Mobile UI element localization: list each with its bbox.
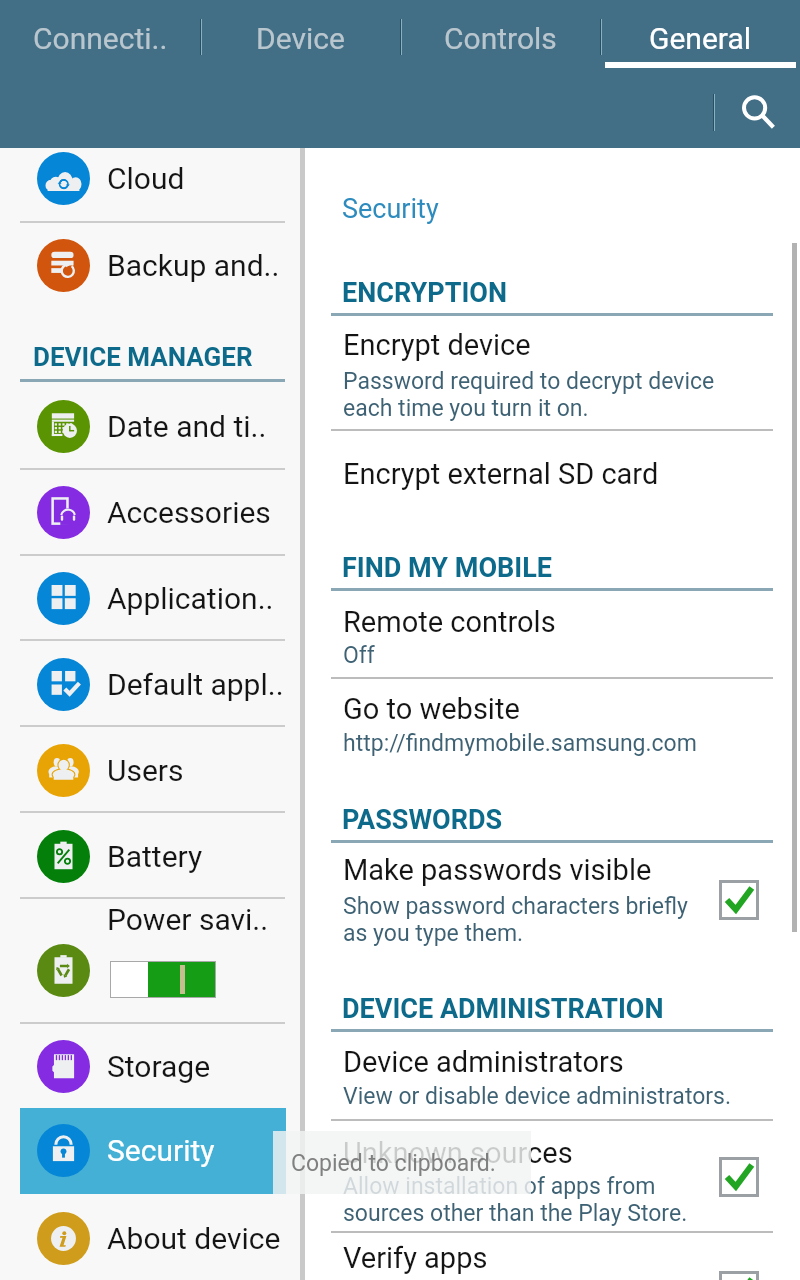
staticText: Verify apps — [343, 1241, 488, 1275]
staticText: Controls — [444, 21, 557, 56]
staticText: View or disable device administrators. — [343, 1083, 732, 1110]
button[interactable]: Unknown sources checkbox, checked — [719, 1157, 759, 1197]
staticText: Off — [343, 642, 375, 669]
button[interactable]: Verify apps — [331, 1233, 773, 1280]
staticText: Cloud — [107, 161, 185, 196]
staticText: Application.. — [107, 581, 274, 616]
staticText: Encrypt external SD card — [343, 457, 659, 491]
button[interactable]: Security — [0, 1107, 300, 1193]
staticText: FIND MY MOBILE — [342, 552, 552, 584]
staticText: Connecti.. — [33, 21, 168, 56]
staticText: http://findmymobile.samsung.com — [343, 730, 697, 757]
button[interactable]: Unknown sources — [331, 1121, 773, 1231]
button[interactable]: ENCRYPTION — [331, 277, 773, 309]
staticText: ENCRYPTION — [342, 277, 507, 309]
staticText: Allow installation of apps from sources … — [343, 1173, 688, 1227]
button[interactable]: Connecti.. — [0, 0, 200, 76]
button[interactable]: About device — [0, 1195, 300, 1280]
staticText: Copied to clipboard. — [291, 1150, 496, 1177]
staticText: Unknown sources — [343, 1136, 573, 1170]
staticText: PASSWORDS — [342, 804, 503, 836]
staticText: DEVICE MANAGER — [33, 342, 253, 372]
button[interactable]: Accessories — [0, 469, 300, 555]
staticText: Go to website — [343, 692, 520, 726]
button[interactable]: Application.. — [0, 555, 300, 641]
button[interactable]: Device administrators — [331, 1033, 773, 1119]
button[interactable]: DEVICE ADMINISTRATION — [331, 993, 773, 1025]
button[interactable]: Users — [0, 727, 300, 813]
button[interactable]: Remote controls — [331, 592, 773, 677]
button[interactable]: Default appl.. — [0, 641, 300, 727]
staticText: General — [649, 21, 752, 56]
staticText: Password required to decrypt device each… — [343, 368, 715, 422]
button[interactable]: Storage — [0, 1023, 300, 1109]
button[interactable]: Make passwords visible checkbox, checked — [719, 880, 759, 920]
staticText: Encrypt device — [343, 328, 531, 362]
button[interactable]: Encrypt device — [331, 316, 773, 429]
button[interactable]: DEVICE MANAGER — [20, 342, 285, 372]
staticText: Storage — [107, 1049, 211, 1084]
staticText: Make passwords visible — [343, 853, 652, 887]
staticText: DEVICE ADMINISTRATION — [342, 993, 664, 1025]
staticText: Remote controls — [343, 605, 556, 639]
button[interactable]: Device — [201, 0, 400, 76]
button[interactable]: Battery — [0, 813, 300, 899]
button[interactable]: Power savi.. — [0, 899, 300, 1023]
staticText: Accessories — [107, 495, 271, 530]
button[interactable]: Encrypt external SD card — [331, 431, 773, 508]
button[interactable]: Power saving toggle — [110, 961, 216, 998]
button[interactable]: Cloud — [0, 142, 300, 215]
staticText: Users — [107, 753, 184, 788]
button[interactable]: General — [601, 0, 800, 76]
button[interactable]: Backup and.. — [0, 222, 300, 308]
staticText: Default appl.. — [107, 667, 284, 702]
staticText: Show password characters briefly as you … — [343, 893, 688, 947]
staticText: Date and ti.. — [107, 409, 267, 444]
staticText: Device — [256, 21, 345, 56]
button[interactable]: Go to website — [331, 679, 773, 768]
button[interactable]: FIND MY MOBILE — [331, 552, 773, 584]
staticText: Device administrators — [343, 1045, 624, 1079]
staticText: Battery — [107, 839, 203, 874]
button[interactable]: PASSWORDS — [331, 804, 773, 836]
button[interactable]: Make passwords visible — [331, 842, 773, 948]
button[interactable]: Controls — [401, 0, 600, 76]
staticText: Security — [342, 193, 439, 225]
staticText: About device — [107, 1221, 281, 1256]
button[interactable]: Verify apps checkbox, checked — [719, 1271, 759, 1280]
staticText: Security — [107, 1133, 215, 1168]
staticText: Power savi.. — [107, 902, 269, 937]
button[interactable]: Search — [726, 83, 792, 145]
staticText: Backup and.. — [107, 248, 280, 283]
button[interactable]: Date and ti.. — [0, 383, 300, 469]
